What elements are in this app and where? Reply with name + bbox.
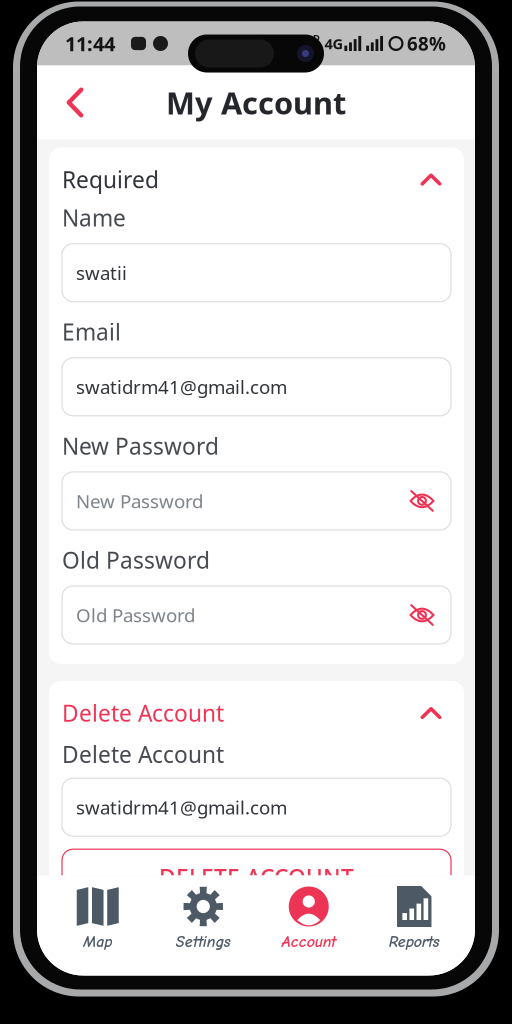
staticText: 68% (407, 31, 446, 56)
staticText: My Account (166, 82, 346, 123)
staticText: Reports (389, 932, 440, 951)
staticText: New Password (76, 488, 203, 513)
staticText: 4G (324, 34, 343, 53)
staticText: VoD (301, 31, 320, 43)
staticText: swatidrm41@gmail.com (76, 374, 287, 399)
staticText: Required (62, 164, 159, 195)
staticText: Map (83, 932, 112, 951)
button[interactable]: Show password (403, 596, 441, 634)
button[interactable]: Back (47, 74, 103, 130)
staticText: Old Password (62, 545, 210, 575)
button[interactable]: Reports (361, 875, 467, 975)
button[interactable]: Account (256, 875, 361, 975)
button[interactable]: Collapse Required (411, 169, 451, 191)
staticText: Delete Account (62, 739, 224, 769)
button[interactable]: Map (45, 875, 150, 975)
button[interactable]: DELETE ACCOUNT (62, 849, 451, 905)
staticText: New Password (62, 431, 219, 461)
staticText: Settings (176, 932, 231, 951)
staticText: DELETE ACCOUNT (159, 862, 354, 892)
staticText: Account (282, 932, 336, 951)
staticText: Name (62, 203, 126, 233)
staticText: Email (62, 317, 121, 347)
staticText: Delete Account (62, 698, 224, 728)
button[interactable]: Collapse Delete Account (411, 702, 451, 724)
staticText: LTE2 (300, 43, 320, 56)
staticText: swatidrm41@gmail.com (76, 795, 287, 820)
button[interactable]: Settings (150, 875, 256, 975)
button[interactable]: Show password (403, 482, 441, 520)
staticText: swatii (76, 260, 127, 285)
staticText: Old Password (76, 603, 195, 627)
staticText: 11:44 (65, 30, 115, 57)
